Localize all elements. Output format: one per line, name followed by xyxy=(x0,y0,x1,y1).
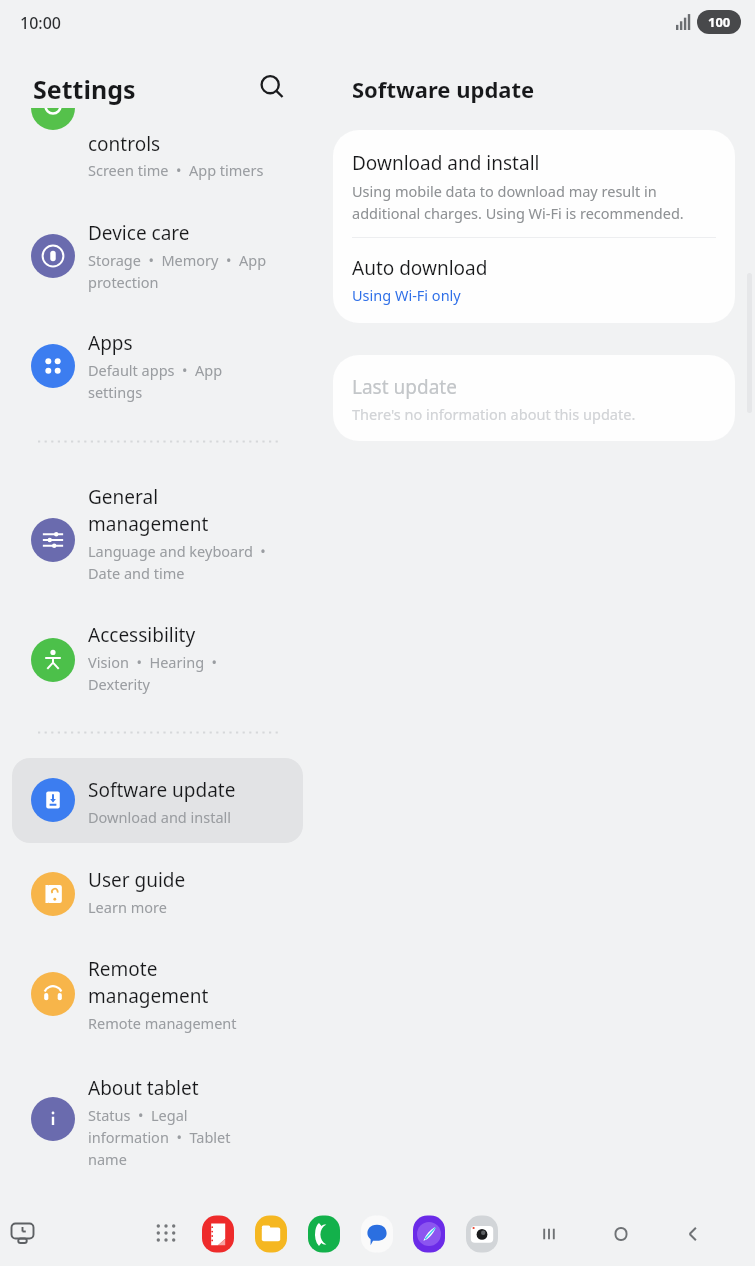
button[interactable]: Home xyxy=(600,1213,642,1255)
staticText: Accessibility xyxy=(88,622,196,648)
staticText: Auto download xyxy=(352,255,488,281)
staticText: 100 xyxy=(708,13,731,31)
staticText: management xyxy=(88,511,209,537)
button[interactable] xyxy=(12,600,303,684)
staticText: additional charges. Using Wi-Fi is recom… xyxy=(352,203,684,223)
staticText: There's no information about this update… xyxy=(352,404,636,424)
button[interactable]: Recents xyxy=(528,1213,570,1255)
staticText: Default apps • App xyxy=(88,360,223,380)
button[interactable]: My Files xyxy=(249,1212,292,1255)
button[interactable] xyxy=(12,462,303,576)
staticText: User guide xyxy=(88,867,186,893)
button[interactable] xyxy=(12,758,303,843)
staticText: Vision • Hearing • xyxy=(88,652,218,672)
button[interactable] xyxy=(12,198,303,282)
staticText: Date and time xyxy=(88,563,185,583)
staticText: Device care xyxy=(88,220,190,246)
staticText: Status • Legal xyxy=(88,1105,188,1125)
staticText: Software update xyxy=(88,777,236,803)
staticText: General xyxy=(88,484,159,510)
button[interactable] xyxy=(12,935,303,1028)
button[interactable] xyxy=(12,1054,303,1159)
staticText: Using mobile data to download may result… xyxy=(352,181,657,201)
button[interactable]: Phone xyxy=(302,1212,345,1255)
button[interactable]: Apps xyxy=(148,1215,184,1251)
staticText: Learn more xyxy=(88,897,167,917)
button[interactable]: Messages xyxy=(355,1212,398,1255)
staticText: settings xyxy=(88,382,143,402)
staticText: Remote xyxy=(88,956,158,982)
button[interactable]: Last update xyxy=(333,355,735,441)
staticText: Remote management xyxy=(88,1013,237,1033)
button[interactable] xyxy=(12,847,303,910)
staticText: controls xyxy=(88,131,161,157)
button[interactable]: Search xyxy=(253,68,291,106)
button[interactable]: Back xyxy=(672,1213,714,1255)
button[interactable]: Samsung Notes xyxy=(196,1212,239,1255)
button[interactable]: Camera xyxy=(460,1212,503,1255)
staticText: 10:00 xyxy=(20,12,61,34)
staticText: information • Tablet xyxy=(88,1127,231,1147)
staticText: protection xyxy=(88,272,159,292)
staticText: Apps xyxy=(88,330,133,356)
button[interactable]: Download and install xyxy=(333,130,735,237)
staticText: Download and install xyxy=(88,807,232,827)
staticText: Language and keyboard • xyxy=(88,541,266,561)
button[interactable]: Internet xyxy=(407,1212,450,1255)
staticText: Storage • Memory • App xyxy=(88,250,267,270)
staticText: About tablet xyxy=(88,1075,199,1101)
staticText: Download and install xyxy=(352,150,540,176)
button[interactable]: Auto download xyxy=(333,238,735,323)
staticText: Software update xyxy=(352,74,535,104)
staticText: name xyxy=(88,1149,127,1169)
staticText: Dexterity xyxy=(88,674,150,694)
staticText: Last update xyxy=(352,374,457,400)
staticText: Screen time • App timers xyxy=(88,160,264,180)
staticText: Settings xyxy=(33,72,136,106)
button[interactable] xyxy=(12,308,303,392)
staticText: management xyxy=(88,983,209,1009)
staticText: Using Wi-Fi only xyxy=(352,285,461,305)
button[interactable]: Screen timeout xyxy=(3,1214,41,1252)
